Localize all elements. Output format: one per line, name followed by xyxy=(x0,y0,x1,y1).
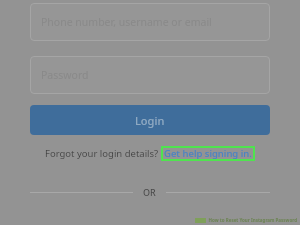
button[interactable]: Phone number, username or email xyxy=(30,3,270,41)
button[interactable]: Login xyxy=(30,105,270,135)
button[interactable]: Password xyxy=(30,56,270,94)
staticText: Phone number, username or email xyxy=(41,15,212,29)
staticText: OR xyxy=(143,186,156,198)
staticText: Get help signing in. xyxy=(164,147,252,160)
staticText: Password xyxy=(41,68,89,82)
staticText: Forgot your login details? xyxy=(45,147,159,160)
button[interactable]: Get help signing in. xyxy=(164,147,252,160)
staticText: How to Reset Your Instagram Password xyxy=(208,217,297,223)
staticText: Login xyxy=(135,113,165,128)
